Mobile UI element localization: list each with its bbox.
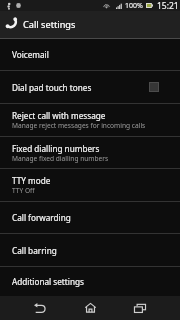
staticText: Call settings — [23, 18, 76, 31]
staticText: 15:21 — [157, 0, 179, 11]
button[interactable]: Dial pad touch tones — [0, 70, 180, 103]
staticText: Call barring — [12, 245, 57, 256]
button[interactable]: Voicemail — [0, 38, 180, 70]
button[interactable]: Back — [0, 296, 80, 320]
button[interactable]: Home — [80, 296, 100, 320]
staticText: Manage fixed dialling numbers — [12, 154, 109, 163]
button[interactable]: Fixed dialling numbers — [0, 136, 180, 168]
button[interactable]: Call forwarding — [0, 201, 180, 233]
staticText: Call forwarding — [12, 212, 71, 223]
staticText: TTY Off — [12, 186, 35, 195]
button[interactable]: Call settings — [0, 11, 180, 38]
button[interactable]: Additional settings — [0, 266, 180, 296]
staticText: Fixed dialling numbers — [12, 143, 100, 154]
staticText: TTY mode — [12, 175, 51, 186]
button[interactable]: Recent apps — [100, 296, 180, 320]
button[interactable]: TTY mode — [0, 168, 180, 201]
staticText: Manage reject messages for incoming call… — [12, 121, 146, 130]
staticText: Reject call with message — [12, 110, 106, 121]
button[interactable]: Call barring — [0, 233, 180, 266]
staticText: 100% — [125, 1, 143, 11]
button[interactable]: Reject call with message — [0, 103, 180, 136]
staticText: Additional settings — [12, 276, 84, 287]
staticText: Dial pad touch tones — [12, 82, 92, 93]
staticText: Voicemail — [12, 49, 49, 60]
